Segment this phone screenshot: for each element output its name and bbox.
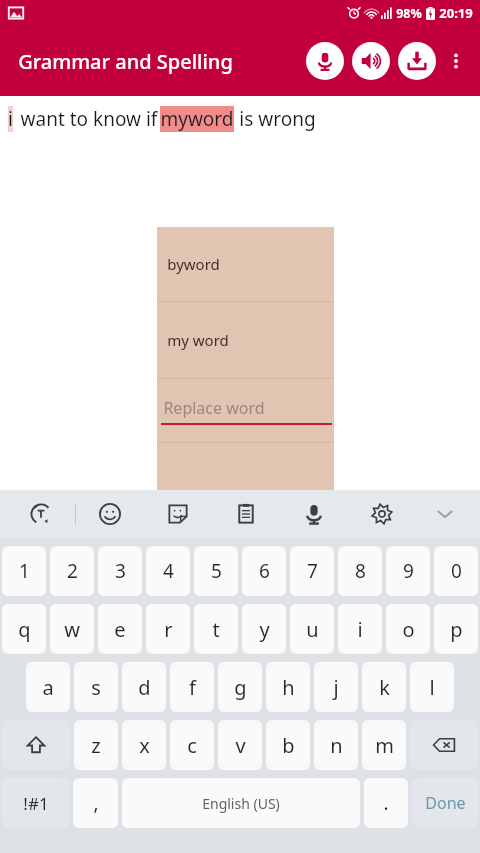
button[interactable]: 2: [50, 546, 94, 596]
button[interactable]: 5: [194, 546, 238, 596]
button[interactable]: Done: [412, 778, 478, 828]
button[interactable]: 8: [338, 546, 382, 596]
staticText: d: [138, 674, 151, 701]
button[interactable]: l: [410, 662, 454, 712]
button[interactable]: ,: [73, 778, 118, 828]
button[interactable]: Collapse keyboard: [416, 490, 474, 538]
button[interactable]: !#1: [2, 778, 69, 828]
staticText: o: [402, 616, 415, 643]
button[interactable]: r: [146, 604, 190, 654]
staticText: l: [429, 674, 435, 701]
button[interactable]: m: [362, 720, 406, 770]
staticText: h: [282, 674, 295, 701]
button[interactable]: Emoji: [76, 490, 144, 538]
staticText: i: [8, 106, 13, 132]
staticText: x: [139, 732, 150, 759]
button[interactable]: Voice typing: [280, 490, 348, 538]
staticText: 0: [451, 558, 462, 584]
button[interactable]: t: [194, 604, 238, 654]
button[interactable]: v: [218, 720, 262, 770]
button[interactable]: 7: [290, 546, 334, 596]
button[interactable]: y: [242, 604, 286, 654]
staticText: n: [330, 732, 343, 759]
staticText: want to know if: [13, 106, 160, 132]
staticText: m: [375, 732, 394, 759]
staticText: 20:19: [439, 4, 473, 22]
staticText: b: [282, 732, 295, 759]
button[interactable]: Clipboard: [212, 490, 280, 538]
staticText: .: [383, 790, 389, 816]
staticText: 8: [355, 558, 366, 584]
button[interactable]: 0: [434, 546, 478, 596]
staticText: 98%: [396, 5, 422, 22]
button[interactable]: myword: [160, 106, 234, 132]
button[interactable]: Stickers: [144, 490, 212, 538]
staticText: Grammar and Spelling: [18, 48, 233, 75]
button[interactable]: More options: [436, 41, 476, 81]
button[interactable]: o: [386, 604, 430, 654]
button[interactable]: k: [362, 662, 406, 712]
button[interactable]: q: [2, 604, 46, 654]
button[interactable]: f: [170, 662, 214, 712]
button[interactable]: 4: [146, 546, 190, 596]
button[interactable]: u: [290, 604, 334, 654]
button[interactable]: 6: [242, 546, 286, 596]
staticText: r: [164, 616, 173, 643]
button[interactable]: English (US): [122, 778, 360, 828]
button[interactable]: Backspace: [410, 720, 478, 770]
staticText: my word: [167, 330, 229, 350]
button[interactable]: Shift: [2, 720, 70, 770]
staticText: u: [306, 616, 319, 643]
button[interactable]: e: [98, 604, 142, 654]
button[interactable]: Read aloud: [352, 42, 390, 80]
staticText: 2: [67, 558, 78, 584]
button[interactable]: c: [170, 720, 214, 770]
button[interactable]: i: [338, 604, 382, 654]
staticText: 6: [259, 558, 270, 584]
staticText: English (US): [202, 794, 280, 813]
staticText: Replace word: [163, 397, 265, 419]
staticText: j: [333, 674, 339, 701]
button[interactable]: a: [26, 662, 70, 712]
button[interactable]: Translate: [6, 490, 75, 538]
staticText: w: [64, 616, 80, 643]
button[interactable]: .: [364, 778, 408, 828]
staticText: k: [379, 674, 390, 701]
button[interactable]: s: [74, 662, 118, 712]
staticText: s: [91, 674, 101, 701]
button[interactable]: w: [50, 604, 94, 654]
button[interactable]: byword: [157, 227, 334, 301]
button[interactable]: n: [314, 720, 358, 770]
staticText: 4: [163, 558, 174, 584]
staticText: p: [450, 616, 463, 643]
staticText: v: [235, 732, 246, 759]
button[interactable]: Keyboard settings: [348, 490, 416, 538]
button[interactable]: j: [314, 662, 358, 712]
button[interactable]: Replace word: [157, 379, 334, 442]
staticText: byword: [167, 254, 220, 274]
button[interactable]: h: [266, 662, 310, 712]
button[interactable]: b: [266, 720, 310, 770]
staticText: a: [42, 674, 54, 701]
staticText: g: [234, 674, 247, 701]
staticText: i: [357, 616, 363, 643]
button[interactable]: Download: [398, 42, 436, 80]
staticText: 5: [211, 558, 222, 584]
button[interactable]: Voice input: [306, 42, 344, 80]
staticText: q: [18, 616, 31, 643]
button[interactable]: z: [74, 720, 118, 770]
staticText: y: [259, 616, 270, 643]
staticText: is wrong: [234, 106, 316, 132]
button[interactable]: x: [122, 720, 166, 770]
button[interactable]: 9: [386, 546, 430, 596]
button[interactable]: g: [218, 662, 262, 712]
button[interactable]: p: [434, 604, 478, 654]
staticText: !#1: [23, 792, 49, 815]
button[interactable]: d: [122, 662, 166, 712]
staticText: 9: [403, 558, 414, 584]
staticText: c: [187, 732, 197, 759]
button[interactable]: my word: [157, 302, 334, 378]
button[interactable]: 1: [2, 546, 46, 596]
button[interactable]: 3: [98, 546, 142, 596]
staticText: t: [212, 616, 220, 643]
